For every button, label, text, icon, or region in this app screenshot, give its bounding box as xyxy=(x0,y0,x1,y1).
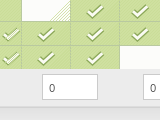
button[interactable]: Checked xyxy=(22,22,70,45)
button[interactable]: Checked xyxy=(71,0,119,21)
button[interactable]: Checked xyxy=(120,0,160,21)
staticText: 0 xyxy=(49,80,56,95)
button[interactable]: Checked xyxy=(71,46,119,69)
button[interactable] xyxy=(22,0,70,21)
button[interactable]: Checked xyxy=(120,22,160,45)
button[interactable]: Checked xyxy=(0,46,21,69)
button[interactable]: 0 xyxy=(143,74,160,100)
button[interactable]: Checked xyxy=(71,22,119,45)
button[interactable] xyxy=(0,0,21,21)
button[interactable]: Checked xyxy=(22,46,70,69)
button[interactable]: Checked xyxy=(0,22,21,45)
staticText: 0 xyxy=(150,80,157,95)
button[interactable]: 0 xyxy=(42,74,98,100)
